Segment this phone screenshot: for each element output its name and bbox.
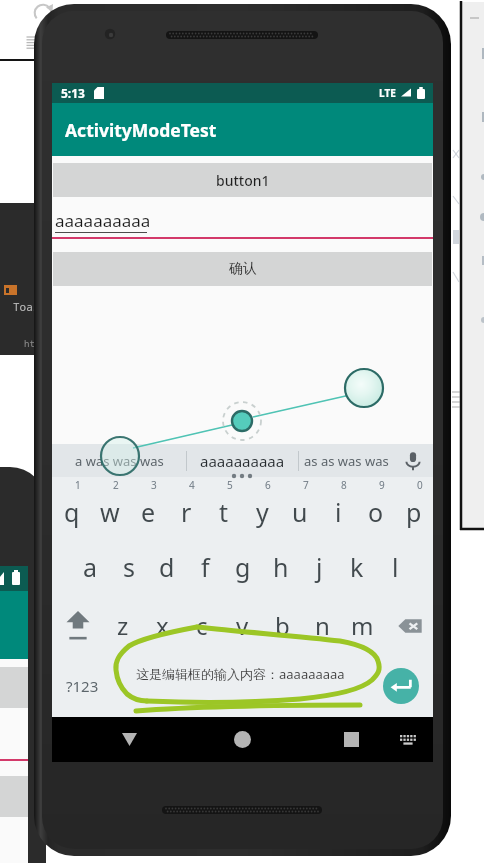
button[interactable]: a: [71, 537, 110, 597]
staticText: m: [351, 609, 374, 642]
staticText: 0: [417, 478, 423, 492]
button[interactable]: Voice input: [393, 444, 433, 477]
button[interactable]: aaaaaaaaaa: [187, 444, 298, 477]
staticText: a was was was: [75, 452, 164, 470]
button[interactable]: button1: [53, 163, 432, 197]
staticText: c: [196, 609, 208, 642]
staticText: 5: [227, 478, 233, 492]
staticText: q: [64, 495, 80, 529]
button[interactable]: 9: [357, 477, 395, 537]
staticText: s: [123, 550, 135, 584]
button[interactable]: 4: [167, 477, 205, 537]
button[interactable]: l: [376, 537, 414, 597]
staticText: d: [159, 550, 175, 584]
button[interactable]: 确认: [53, 252, 432, 286]
button[interactable]: s: [110, 537, 148, 597]
staticText: 3: [151, 478, 157, 492]
staticText: z: [117, 609, 129, 642]
button[interactable]: z: [103, 597, 142, 654]
staticText: 7: [303, 478, 309, 492]
button[interactable]: Switch keyboard: [390, 717, 426, 762]
button[interactable]: g: [224, 537, 262, 597]
staticText: aaaaaaaaaa: [200, 451, 285, 471]
staticText: button1: [216, 171, 270, 190]
staticText: 1: [75, 478, 81, 492]
staticText: 这是编辑框的输入内容：aaaaaaaaa: [136, 665, 345, 683]
button[interactable]: v: [222, 597, 262, 654]
button[interactable]: c: [182, 597, 222, 654]
button[interactable]: ?123: [52, 654, 109, 717]
button[interactable]: a was was was: [52, 444, 186, 477]
staticText: 2: [113, 478, 119, 492]
staticText: h: [273, 550, 289, 584]
staticText: w: [100, 495, 120, 529]
staticText: a: [83, 550, 98, 584]
staticText: k: [350, 550, 364, 584]
staticText: n: [315, 609, 330, 642]
staticText: u: [292, 495, 308, 529]
staticText: as as was was: [304, 452, 389, 470]
button[interactable]: Shift: [52, 597, 103, 654]
button[interactable]: [109, 654, 376, 717]
button[interactable]: 3: [129, 477, 167, 537]
button[interactable]: 8: [319, 477, 357, 537]
staticText: ActivityModeTest: [65, 118, 217, 142]
staticText: 9: [379, 478, 385, 492]
button[interactable]: 1: [52, 477, 91, 537]
button[interactable]: Home: [222, 717, 262, 762]
staticText: http: [24, 337, 46, 349]
button[interactable]: Delete: [382, 597, 433, 654]
button[interactable]: Back: [109, 717, 150, 762]
button[interactable]: n: [302, 597, 342, 654]
staticText: LTE: [379, 86, 396, 100]
button[interactable]: x: [142, 597, 182, 654]
staticText: 5:13: [61, 85, 85, 101]
button[interactable]: f: [186, 537, 224, 597]
staticText: f: [201, 550, 210, 584]
button[interactable]: h: [262, 537, 300, 597]
button[interactable]: 6: [243, 477, 281, 537]
button[interactable]: 7: [281, 477, 319, 537]
button[interactable]: m: [342, 597, 382, 654]
staticText: l: [392, 550, 399, 584]
staticText: 6: [265, 478, 271, 492]
staticText: 确认: [229, 260, 257, 278]
button[interactable]: 0: [395, 477, 433, 537]
staticText: p: [406, 495, 422, 529]
button[interactable]: as as was was: [299, 444, 393, 477]
staticText: t: [219, 495, 229, 529]
staticText: b: [275, 609, 290, 642]
button[interactable]: b: [262, 597, 302, 654]
staticText: 4: [189, 478, 195, 492]
staticText: o: [368, 495, 384, 529]
staticText: r: [181, 495, 192, 529]
staticText: ?123: [66, 676, 99, 696]
button[interactable]: k: [338, 537, 376, 597]
button[interactable]: Recents: [331, 717, 371, 762]
staticText: j: [316, 550, 323, 584]
staticText: i: [335, 495, 342, 529]
button[interactable]: Enter: [376, 654, 433, 717]
staticText: y: [256, 495, 269, 529]
staticText: x: [156, 609, 169, 642]
button[interactable]: 5: [205, 477, 243, 537]
staticText: 8: [341, 478, 347, 492]
staticText: v: [236, 609, 249, 642]
button[interactable]: d: [148, 537, 186, 597]
staticText: Toast: [13, 299, 46, 314]
button[interactable]: 2: [91, 477, 129, 537]
staticText: g: [235, 550, 251, 584]
button[interactable]: j: [300, 537, 338, 597]
staticText: e: [141, 495, 156, 529]
staticText: aaaaaaaaaa: [55, 209, 151, 232]
